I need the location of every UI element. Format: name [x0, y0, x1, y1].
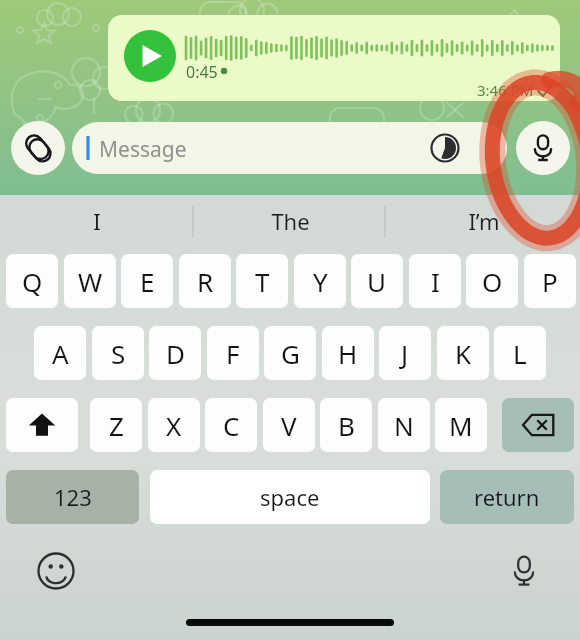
staticText: X [166, 408, 182, 443]
button[interactable]: Backspace [502, 398, 574, 452]
button[interactable]: V [263, 398, 315, 452]
staticText: G [281, 336, 300, 371]
staticText: M [449, 408, 473, 443]
button[interactable]: I’m [387, 195, 580, 247]
button[interactable]: I [409, 254, 461, 308]
button[interactable]: U [351, 254, 403, 308]
staticText: T [255, 264, 270, 299]
button[interactable]: C [205, 398, 257, 452]
button[interactable]: S [92, 326, 144, 380]
staticText: The [271, 206, 310, 236]
button[interactable]: I [0, 195, 194, 247]
button[interactable]: G [264, 326, 316, 380]
staticText: C [223, 408, 240, 443]
button[interactable]: W [64, 254, 116, 308]
staticText: 0:45 [186, 61, 218, 83]
staticText: B [338, 408, 355, 443]
button[interactable]: Dictation [498, 545, 550, 597]
staticText: L [513, 336, 527, 371]
staticText: U [367, 264, 387, 299]
button[interactable]: Attach file [11, 121, 65, 175]
button[interactable]: The [194, 195, 387, 247]
staticText: J [401, 336, 409, 371]
button[interactable]: K [437, 326, 489, 380]
staticText: space [260, 482, 320, 512]
button[interactable]: return [440, 470, 574, 524]
button[interactable] [6, 398, 78, 452]
button[interactable]: X [148, 398, 200, 452]
staticText: I [431, 264, 440, 299]
button[interactable]: Emoji keyboard [30, 545, 82, 597]
button[interactable]: J [379, 326, 431, 380]
staticText: E [140, 264, 155, 299]
staticText: S [111, 336, 126, 371]
staticText: 123 [54, 482, 92, 512]
staticText: 3:46 PM [477, 80, 534, 100]
staticText: R [197, 264, 214, 299]
button[interactable]: Message [72, 122, 507, 174]
staticText: N [394, 408, 414, 443]
button[interactable]: P [524, 254, 576, 308]
button[interactable]: N [378, 398, 430, 452]
staticText: Y [313, 264, 328, 299]
button[interactable]: R [179, 254, 231, 308]
staticText: Q [22, 264, 43, 299]
staticText: W [78, 264, 103, 299]
button[interactable]: 123 [6, 470, 139, 524]
staticText: I [93, 206, 101, 236]
button[interactable]: space [150, 470, 430, 524]
button[interactable]: M [435, 398, 487, 452]
staticText: return [474, 482, 540, 512]
staticText: D [166, 336, 185, 371]
staticText: A [52, 336, 69, 371]
button[interactable]: H [322, 326, 374, 380]
button[interactable]: F [207, 326, 259, 380]
staticText: Message [99, 135, 187, 164]
button[interactable]: E [121, 254, 173, 308]
button[interactable]: Q [6, 254, 58, 308]
staticText: V [281, 408, 297, 443]
staticText: F [226, 336, 240, 371]
button[interactable]: T [236, 254, 288, 308]
staticText: I’m [468, 206, 500, 236]
button[interactable]: O [466, 254, 518, 308]
button[interactable]: Record voice message [516, 121, 570, 175]
staticText: P [542, 264, 558, 299]
staticText: O [482, 264, 503, 299]
button[interactable]: Z [90, 398, 142, 452]
button[interactable]: Y [294, 254, 346, 308]
staticText: K [455, 336, 472, 371]
staticText: H [338, 336, 358, 371]
button[interactable]: 0:45 [108, 15, 560, 101]
button[interactable]: D [149, 326, 201, 380]
staticText: Z [109, 408, 124, 443]
button[interactable]: B [320, 398, 372, 452]
button[interactable]: L [494, 326, 546, 380]
button[interactable]: A [34, 326, 86, 380]
